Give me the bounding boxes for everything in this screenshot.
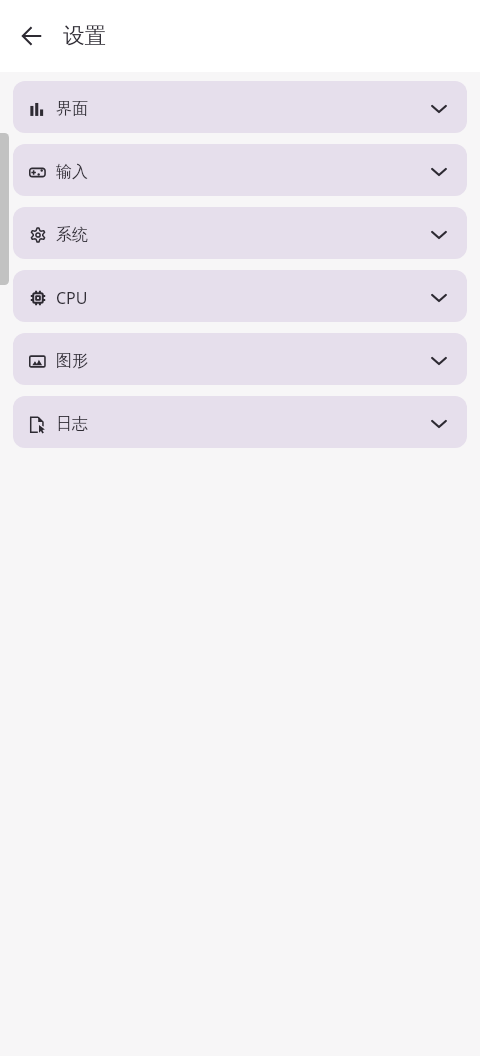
other: Expand Interface [427, 97, 451, 121]
other: Expand Logs [427, 412, 451, 436]
other: Expand System [427, 223, 451, 247]
button[interactable]: Back [12, 16, 52, 56]
button[interactable]: 输入 [13, 144, 467, 196]
button[interactable]: 系统 [13, 207, 467, 259]
other: Expand CPU [427, 286, 451, 310]
staticText: 输入 [56, 162, 88, 182]
button[interactable]: CPU [13, 270, 467, 322]
staticText: 设置 [63, 22, 106, 49]
other: Expand Graphics [427, 349, 451, 373]
staticText: 日志 [56, 414, 88, 434]
button[interactable]: 图形 [13, 333, 467, 385]
staticText: CPU [56, 287, 88, 309]
staticText: 界面 [56, 99, 88, 119]
staticText: 系统 [56, 225, 88, 245]
other: Expand Input [427, 160, 451, 184]
staticText: 图形 [56, 351, 88, 371]
button[interactable]: 日志 [13, 396, 467, 448]
button[interactable]: 界面 [13, 81, 467, 133]
